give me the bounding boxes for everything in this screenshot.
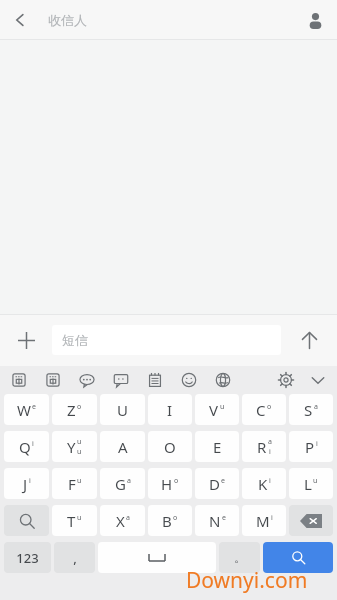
button[interactable]: Back (0, 0, 40, 40)
button[interactable]: X (100, 505, 145, 536)
staticText: i (269, 476, 271, 486)
staticText: E (213, 437, 222, 457)
button[interactable]: N (195, 505, 239, 536)
button[interactable]: M (242, 505, 286, 536)
staticText: i (32, 439, 34, 449)
staticText: X (116, 511, 125, 531)
button[interactable]: L (289, 468, 333, 499)
button[interactable]: C (242, 394, 286, 425)
button[interactable]: B (148, 505, 192, 536)
button[interactable]: Z (52, 394, 97, 425)
staticText: Y (67, 437, 76, 457)
staticText: O (164, 437, 176, 457)
button[interactable]: J (4, 468, 49, 499)
button[interactable]: K (242, 468, 286, 499)
staticText: 。 (234, 550, 246, 565)
staticText: , (73, 549, 77, 567)
staticText: K (258, 474, 268, 494)
button[interactable]: Settings (275, 369, 297, 391)
button[interactable]: R (242, 431, 286, 462)
button[interactable]: Contacts (293, 0, 337, 40)
staticText: I (167, 400, 173, 420)
staticText: Q (19, 437, 31, 457)
staticText: u (313, 476, 318, 486)
staticText: G (115, 474, 126, 494)
staticText: R (257, 437, 267, 457)
staticText: 短信 (62, 332, 88, 348)
staticText: e (222, 513, 226, 523)
staticText: u (77, 447, 82, 457)
button[interactable]: A (100, 431, 145, 462)
staticText: u (77, 513, 82, 523)
button[interactable]: H (148, 468, 192, 499)
button[interactable]: 。 (219, 542, 260, 573)
staticText: u (77, 476, 82, 486)
button[interactable]: Y (52, 431, 97, 462)
staticText: P (305, 437, 315, 457)
staticText: a (268, 437, 272, 447)
staticText: e (221, 476, 225, 486)
staticText: u (77, 437, 82, 447)
staticText: o (77, 402, 82, 412)
button[interactable]: G (100, 468, 145, 499)
staticText: U (117, 400, 128, 420)
staticText: H (161, 474, 173, 494)
staticText: a (314, 402, 318, 412)
button[interactable]: Chinese input (8, 369, 30, 391)
staticText: u (220, 402, 225, 412)
staticText: 收信人 (48, 12, 87, 28)
staticText: D (209, 474, 220, 494)
staticText: i (316, 439, 318, 449)
button[interactable]: Space (98, 542, 216, 573)
button[interactable]: W (4, 394, 49, 425)
staticText: o (173, 513, 178, 523)
staticText: V (209, 400, 219, 420)
button[interactable]: Search (4, 505, 49, 536)
staticText: o (267, 402, 272, 412)
staticText: S (304, 400, 313, 420)
staticText: N (209, 511, 221, 531)
button[interactable]: Search enter (263, 542, 333, 573)
button[interactable]: V (195, 394, 239, 425)
button[interactable]: Quick reply (110, 369, 132, 391)
button[interactable]: Translate (212, 369, 234, 391)
button[interactable]: 123 (4, 542, 51, 573)
button[interactable]: O (148, 431, 192, 462)
staticText: a (127, 476, 131, 486)
staticText: M (256, 511, 270, 531)
staticText: A (118, 437, 128, 457)
button[interactable]: , (54, 542, 95, 573)
button[interactable]: Hide keyboard (307, 369, 329, 391)
button[interactable]: Send (281, 314, 337, 366)
staticText: e (32, 402, 36, 412)
button[interactable]: I (148, 394, 192, 425)
staticText: i (271, 513, 273, 523)
staticText: J (23, 474, 28, 494)
staticText: a (126, 513, 130, 523)
staticText: W (17, 400, 31, 420)
staticText: o (174, 476, 179, 486)
button[interactable]: T (52, 505, 97, 536)
button[interactable]: U (100, 394, 145, 425)
button[interactable]: Add attachment (0, 314, 52, 366)
staticText: Z (67, 400, 76, 420)
staticText: B (162, 511, 172, 531)
button[interactable]: Clipboard (144, 369, 166, 391)
staticText: C (256, 400, 266, 420)
staticText: i (269, 447, 271, 457)
button[interactable]: Q (4, 431, 49, 462)
staticText: i (29, 476, 31, 486)
button[interactable]: E (195, 431, 239, 462)
button[interactable]: F (52, 468, 97, 499)
button[interactable]: Emoji (178, 369, 200, 391)
button[interactable]: D (195, 468, 239, 499)
button[interactable]: S (289, 394, 333, 425)
staticText: 123 (16, 549, 39, 567)
button[interactable]: P (289, 431, 333, 462)
staticText: T (67, 511, 76, 531)
button[interactable]: Backspace (289, 505, 333, 536)
button[interactable]: 短信 (52, 325, 281, 355)
button[interactable]: English input (42, 369, 64, 391)
staticText: Downyi.com (186, 566, 308, 595)
button[interactable]: Phrases (76, 369, 98, 391)
